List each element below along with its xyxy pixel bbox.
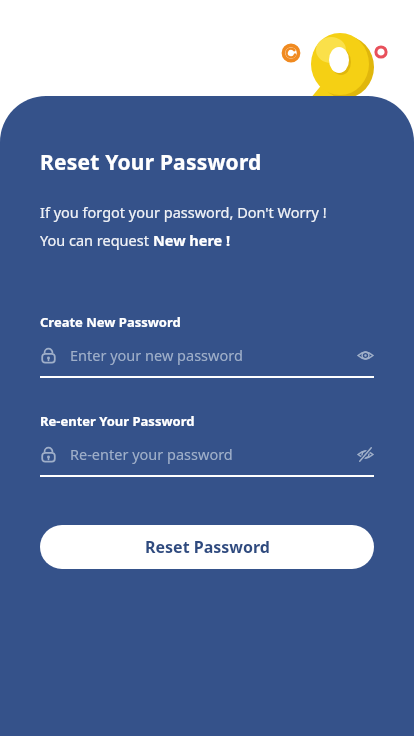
button[interactable]: Password bbox=[40, 444, 374, 464]
staticText: Reset Password bbox=[145, 536, 270, 558]
other: Show password bbox=[357, 347, 374, 364]
button[interactable]: Password bbox=[40, 345, 374, 365]
other: Password bbox=[40, 446, 57, 463]
staticText: Re-enter your password bbox=[70, 444, 357, 464]
staticText: Enter your new password bbox=[70, 345, 357, 365]
staticText: Create New Password bbox=[40, 313, 181, 331]
staticText: If you forgot your password, Don't Worry… bbox=[40, 202, 327, 222]
staticText: Reset Your Password bbox=[40, 148, 262, 177]
staticText: Re-enter Your Password bbox=[40, 412, 195, 430]
other: Password bbox=[40, 347, 57, 364]
other: Hide password bbox=[357, 446, 374, 463]
button[interactable]: Reset Password bbox=[40, 525, 374, 569]
staticText: You can request bbox=[40, 230, 153, 250]
button[interactable]: New here ! bbox=[153, 230, 231, 250]
